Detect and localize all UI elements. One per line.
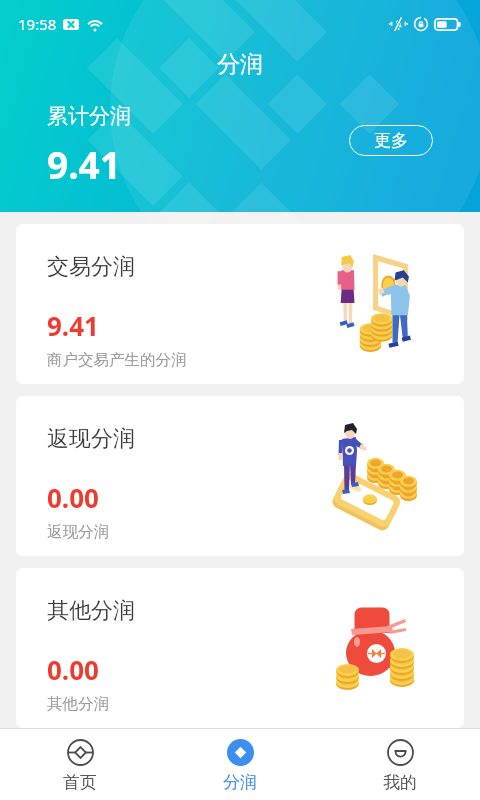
- button[interactable]: 返现分润: [16, 396, 464, 556]
- staticText: 其他分润: [47, 597, 135, 625]
- staticText: 其他分润: [47, 694, 109, 714]
- button[interactable]: 其他分润: [16, 568, 464, 728]
- staticText: 首页: [63, 772, 97, 793]
- staticText: 19:58: [18, 14, 57, 34]
- staticText: 商户交易产生的分润: [47, 350, 187, 370]
- staticText: 更多: [374, 130, 408, 151]
- staticText: 分润: [223, 772, 257, 793]
- staticText: 返现分润: [47, 425, 135, 453]
- staticText: 我的: [383, 772, 417, 793]
- button[interactable]: 首页: [0, 729, 160, 800]
- staticText: 9.41: [47, 139, 121, 189]
- staticText: 累计分润: [47, 103, 131, 129]
- staticText: 9.41: [47, 308, 99, 343]
- button[interactable]: 更多: [349, 125, 433, 156]
- staticText: 0.00: [47, 652, 99, 687]
- staticText: 0.00: [47, 480, 99, 515]
- button[interactable]: 交易分润: [16, 224, 464, 384]
- staticText: 分润: [217, 50, 263, 79]
- staticText: 交易分润: [47, 253, 135, 281]
- button[interactable]: 分润: [160, 729, 320, 800]
- staticText: 返现分润: [47, 522, 109, 542]
- button[interactable]: 我的: [320, 729, 480, 800]
